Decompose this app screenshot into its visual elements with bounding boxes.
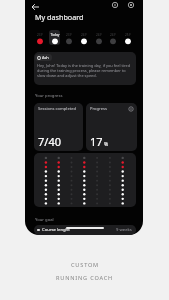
button[interactable]: Today [48, 30, 62, 45]
button[interactable]: 23 F [33, 30, 47, 45]
staticText: Ash [42, 55, 49, 60]
button[interactable]: 24 F [106, 30, 120, 45]
button[interactable]: More info [128, 106, 134, 112]
button[interactable]: Back [31, 2, 40, 11]
staticText: 25 F [121, 33, 135, 37]
button[interactable]: Course lenght [34, 225, 136, 235]
button[interactable]: Info [111, 1, 119, 9]
staticText: CUSTOM [71, 261, 99, 269]
button[interactable]: Progress [86, 103, 137, 151]
button[interactable]: Sessions completed [34, 103, 83, 151]
staticText: 7/40 [38, 134, 61, 149]
staticText: 23 F [62, 33, 76, 37]
staticText: 9 weeks [116, 227, 132, 233]
staticText: Course lenght [42, 227, 70, 233]
button[interactable]: Settings [127, 1, 135, 9]
button[interactable]: 24 F [92, 30, 106, 45]
staticText: Your goal [35, 217, 54, 223]
staticText: 24 F [92, 33, 106, 37]
staticText: 17 [90, 134, 103, 149]
staticText: RUNNING COACH [56, 274, 113, 282]
staticText: My dashboard [35, 12, 84, 22]
staticText: Sessions completed [38, 106, 77, 112]
button[interactable]: Ash [34, 52, 136, 85]
staticText: 23 F [33, 33, 47, 37]
staticText: 24 F [77, 33, 91, 37]
button[interactable]: 25 F [121, 30, 135, 45]
staticText: Hey, John! Today is the training day, if… [37, 63, 134, 78]
staticText: % [104, 141, 109, 148]
staticText: Today [48, 33, 62, 37]
staticText: Your progress [35, 93, 63, 99]
button[interactable]: 24 F [77, 30, 91, 45]
button[interactable]: 23 F [62, 30, 76, 45]
staticText: Progress [90, 106, 107, 112]
staticText: 24 F [106, 33, 120, 37]
